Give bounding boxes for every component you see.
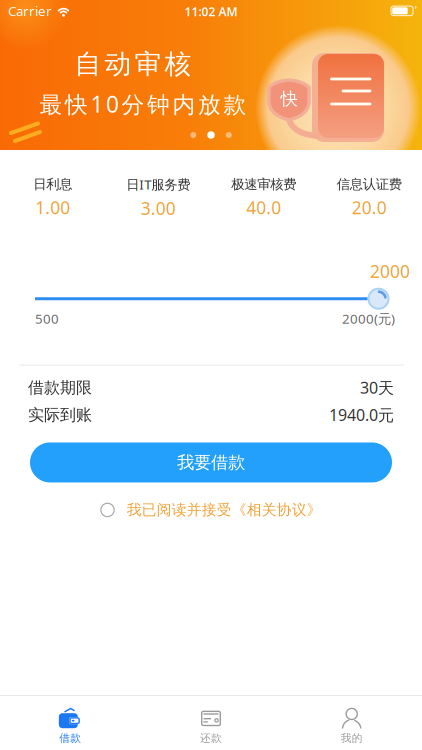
staticText: 快 <box>280 88 297 110</box>
staticText: 30天 <box>360 377 394 398</box>
staticText: 日利息 <box>33 176 72 193</box>
staticText: 实际到账 <box>28 405 92 425</box>
staticText: 2000(元) <box>342 310 395 327</box>
staticText: 11:02 AM <box>184 3 237 19</box>
staticText: 20.0 <box>352 196 387 219</box>
staticText: 2000 <box>370 260 410 283</box>
staticText: 日IT服务费 <box>126 175 190 193</box>
staticText: 1940.0元 <box>329 404 394 425</box>
staticText: 我要借款 <box>177 452 245 473</box>
staticText: 40.0 <box>246 196 281 219</box>
staticText: 最快10分钟内放款 <box>39 89 246 119</box>
staticText: 我的 <box>341 732 363 745</box>
button[interactable]: 我的 <box>281 696 422 747</box>
staticText: 极速审核费 <box>231 176 296 193</box>
staticText: 信息认证费 <box>337 176 402 193</box>
staticText: 还款 <box>200 732 222 745</box>
staticText: 我已阅读并接受《相关协议》 <box>127 501 322 519</box>
button[interactable]: 借款 <box>0 696 141 747</box>
button[interactable]: 还款 <box>141 696 281 747</box>
button[interactable]: 我已阅读并接受《相关协议》 <box>100 501 322 519</box>
button[interactable]: 我要借款 <box>30 442 392 482</box>
staticText: 借款期限 <box>28 378 92 397</box>
staticText: 3.00 <box>141 197 176 220</box>
staticText: 自动审核 <box>74 48 191 80</box>
staticText: 1.00 <box>35 196 70 219</box>
staticText: 500 <box>35 310 59 327</box>
staticText: 借款 <box>59 732 81 745</box>
staticText: Carrier <box>8 2 52 20</box>
